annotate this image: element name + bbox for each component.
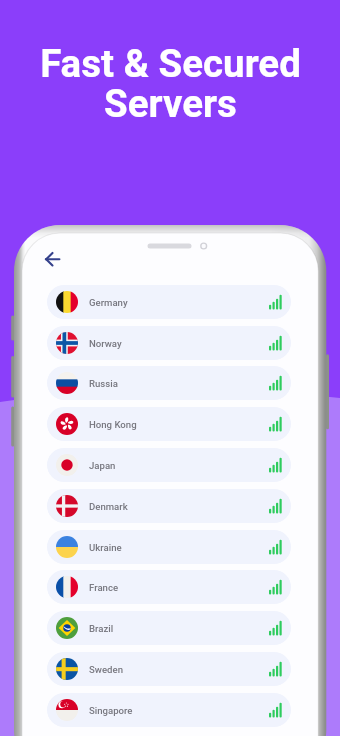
button[interactable]: Germany [47,285,291,319]
button[interactable]: Sweden [47,652,291,686]
staticText: Hong Kong [89,419,137,430]
button[interactable]: France [47,570,291,604]
button[interactable]: Ukraine [47,530,291,564]
staticText: Japan [89,460,116,471]
staticText: Denmark [89,501,128,512]
button[interactable]: Norway [47,326,291,360]
button[interactable]: Japan [47,448,291,482]
staticText: Norway [89,338,122,349]
staticText: Ukraine [89,542,122,553]
staticText: Russia [89,378,118,389]
staticText: France [89,582,119,593]
button[interactable]: Singapore [47,693,291,727]
staticText: Germany [89,297,128,308]
staticText: Singapore [89,705,133,716]
staticText: Brazil [89,623,114,634]
button[interactable]: Denmark [47,489,291,523]
button[interactable]: Russia [47,366,291,400]
button[interactable]: Hong Kong [47,407,291,441]
staticText: Sweden [89,664,123,675]
button[interactable]: Back [39,246,66,273]
button[interactable]: Brazil [47,611,291,645]
staticText: Fast & Secured Servers [40,41,301,126]
